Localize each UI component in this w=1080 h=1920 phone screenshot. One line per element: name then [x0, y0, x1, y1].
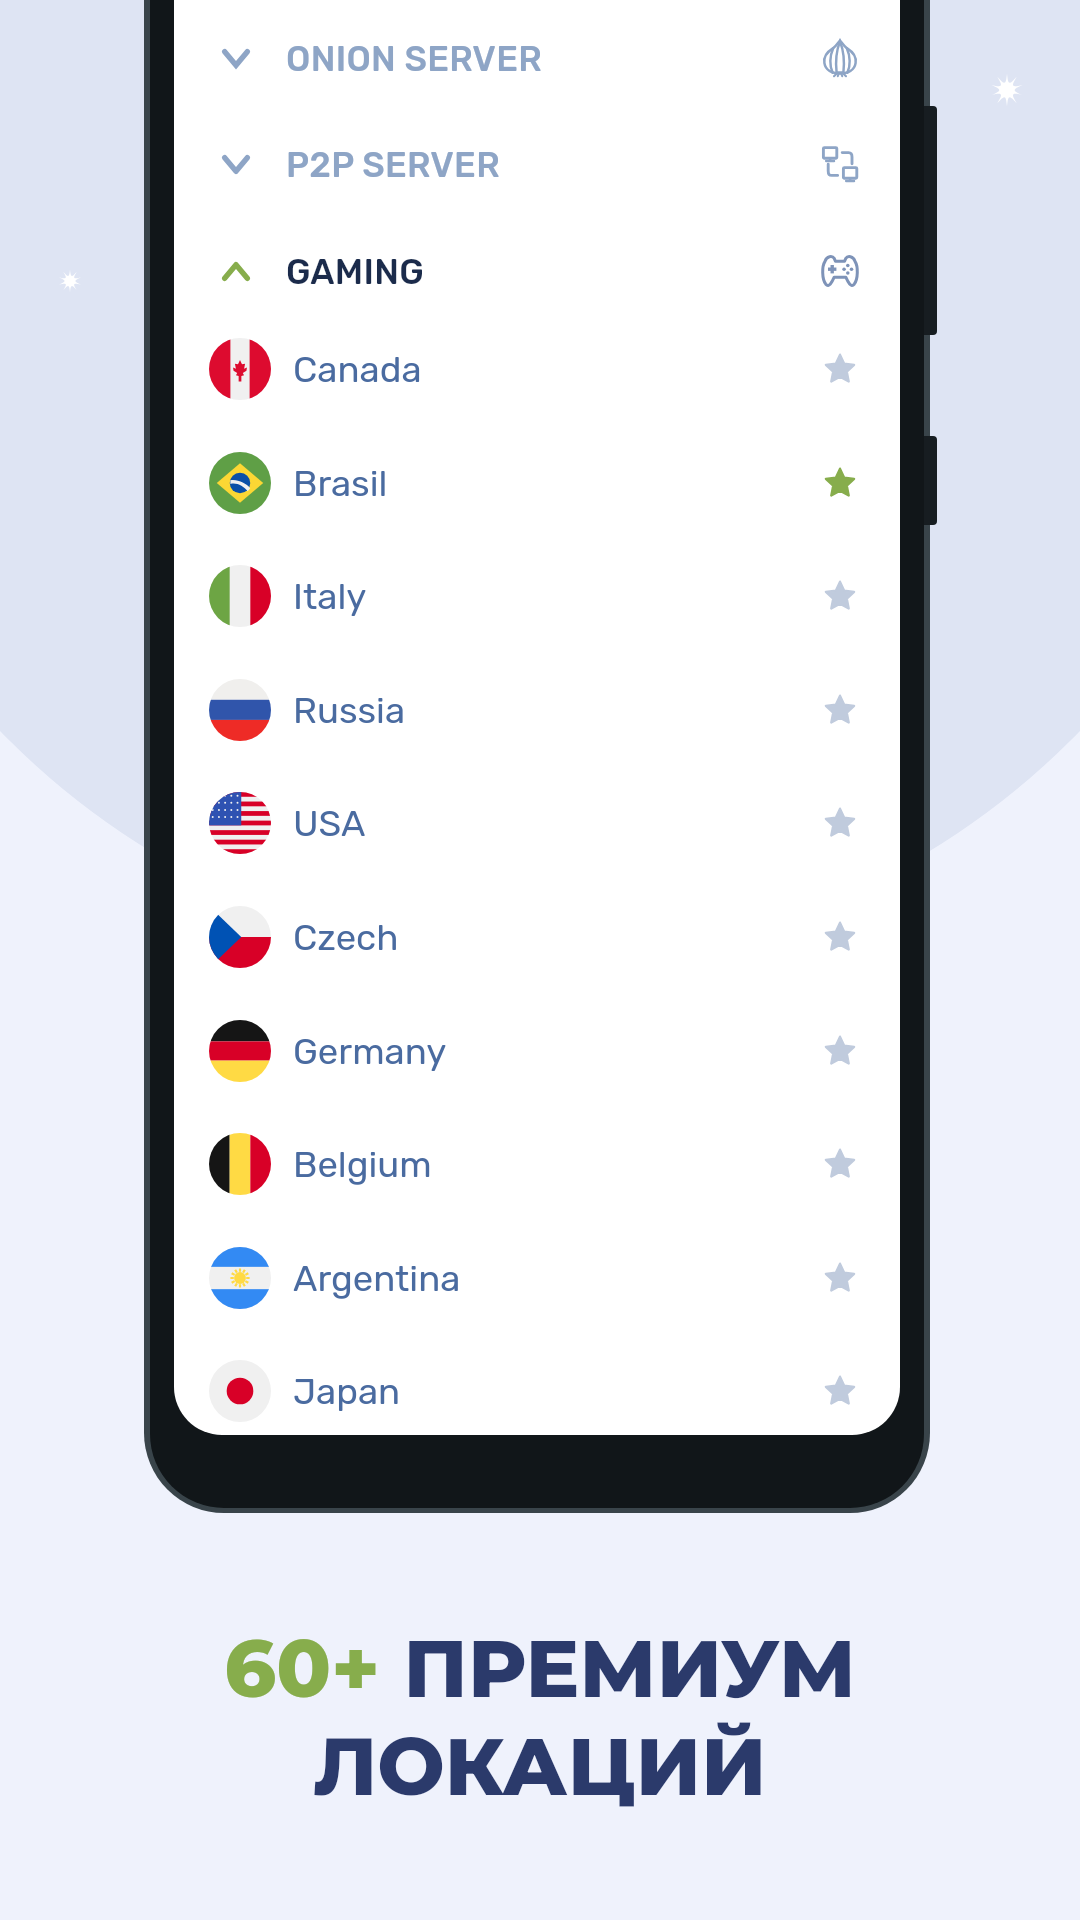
- staticText: ЛОКАЦИЙ: [313, 1718, 767, 1816]
- button[interactable]: Favourite Brasil: [824, 467, 856, 499]
- button[interactable]: Favourite Russia: [824, 694, 856, 726]
- staticText: Belgium: [293, 1143, 432, 1186]
- staticText: Brasil: [293, 462, 388, 505]
- button[interactable]: Favourite Belgium: [824, 1148, 856, 1180]
- button[interactable]: Favourite Italy: [824, 580, 856, 612]
- staticText: Germany: [293, 1030, 447, 1073]
- button[interactable]: Favourite Canada: [824, 353, 856, 385]
- button[interactable]: USA: [174, 767, 900, 879]
- button[interactable]: Czech: [174, 881, 900, 993]
- button[interactable]: Favourite Czech: [824, 921, 856, 953]
- staticText: Canada: [293, 348, 422, 391]
- button[interactable]: ONION SERVER: [820, 38, 860, 78]
- button[interactable]: Argentina: [174, 1222, 900, 1334]
- staticText: GAMING: [286, 251, 425, 292]
- button[interactable]: Canada: [174, 313, 900, 425]
- button[interactable]: P2P SERVER: [820, 144, 860, 184]
- button[interactable]: P2P SERVER: [174, 111, 900, 217]
- staticText: 60+ ПРЕМИУМ: [224, 1620, 856, 1718]
- button[interactable]: Favourite Argentina: [824, 1262, 856, 1294]
- staticText: P2P SERVER: [286, 144, 500, 185]
- staticText: ONION SERVER: [286, 38, 543, 79]
- staticText: Japan: [293, 1370, 401, 1413]
- button[interactable]: Brasil: [174, 427, 900, 539]
- staticText: Argentina: [293, 1257, 461, 1300]
- staticText: Czech: [293, 916, 399, 959]
- button[interactable]: GAMING: [820, 251, 860, 291]
- button[interactable]: Belgium: [174, 1108, 900, 1220]
- button[interactable]: Germany: [174, 995, 900, 1107]
- staticText: Russia: [293, 689, 406, 732]
- button[interactable]: Italy: [174, 540, 900, 652]
- button[interactable]: Favourite Germany: [824, 1035, 856, 1067]
- button[interactable]: ONION SERVER: [174, 5, 900, 111]
- button[interactable]: Japan: [174, 1335, 900, 1435]
- button[interactable]: GAMING: [174, 218, 900, 324]
- button[interactable]: Russia: [174, 654, 900, 766]
- button[interactable]: Favourite USA: [824, 807, 856, 839]
- staticText: USA: [293, 802, 366, 845]
- button[interactable]: Favourite Japan: [824, 1375, 856, 1407]
- staticText: Italy: [293, 575, 367, 618]
